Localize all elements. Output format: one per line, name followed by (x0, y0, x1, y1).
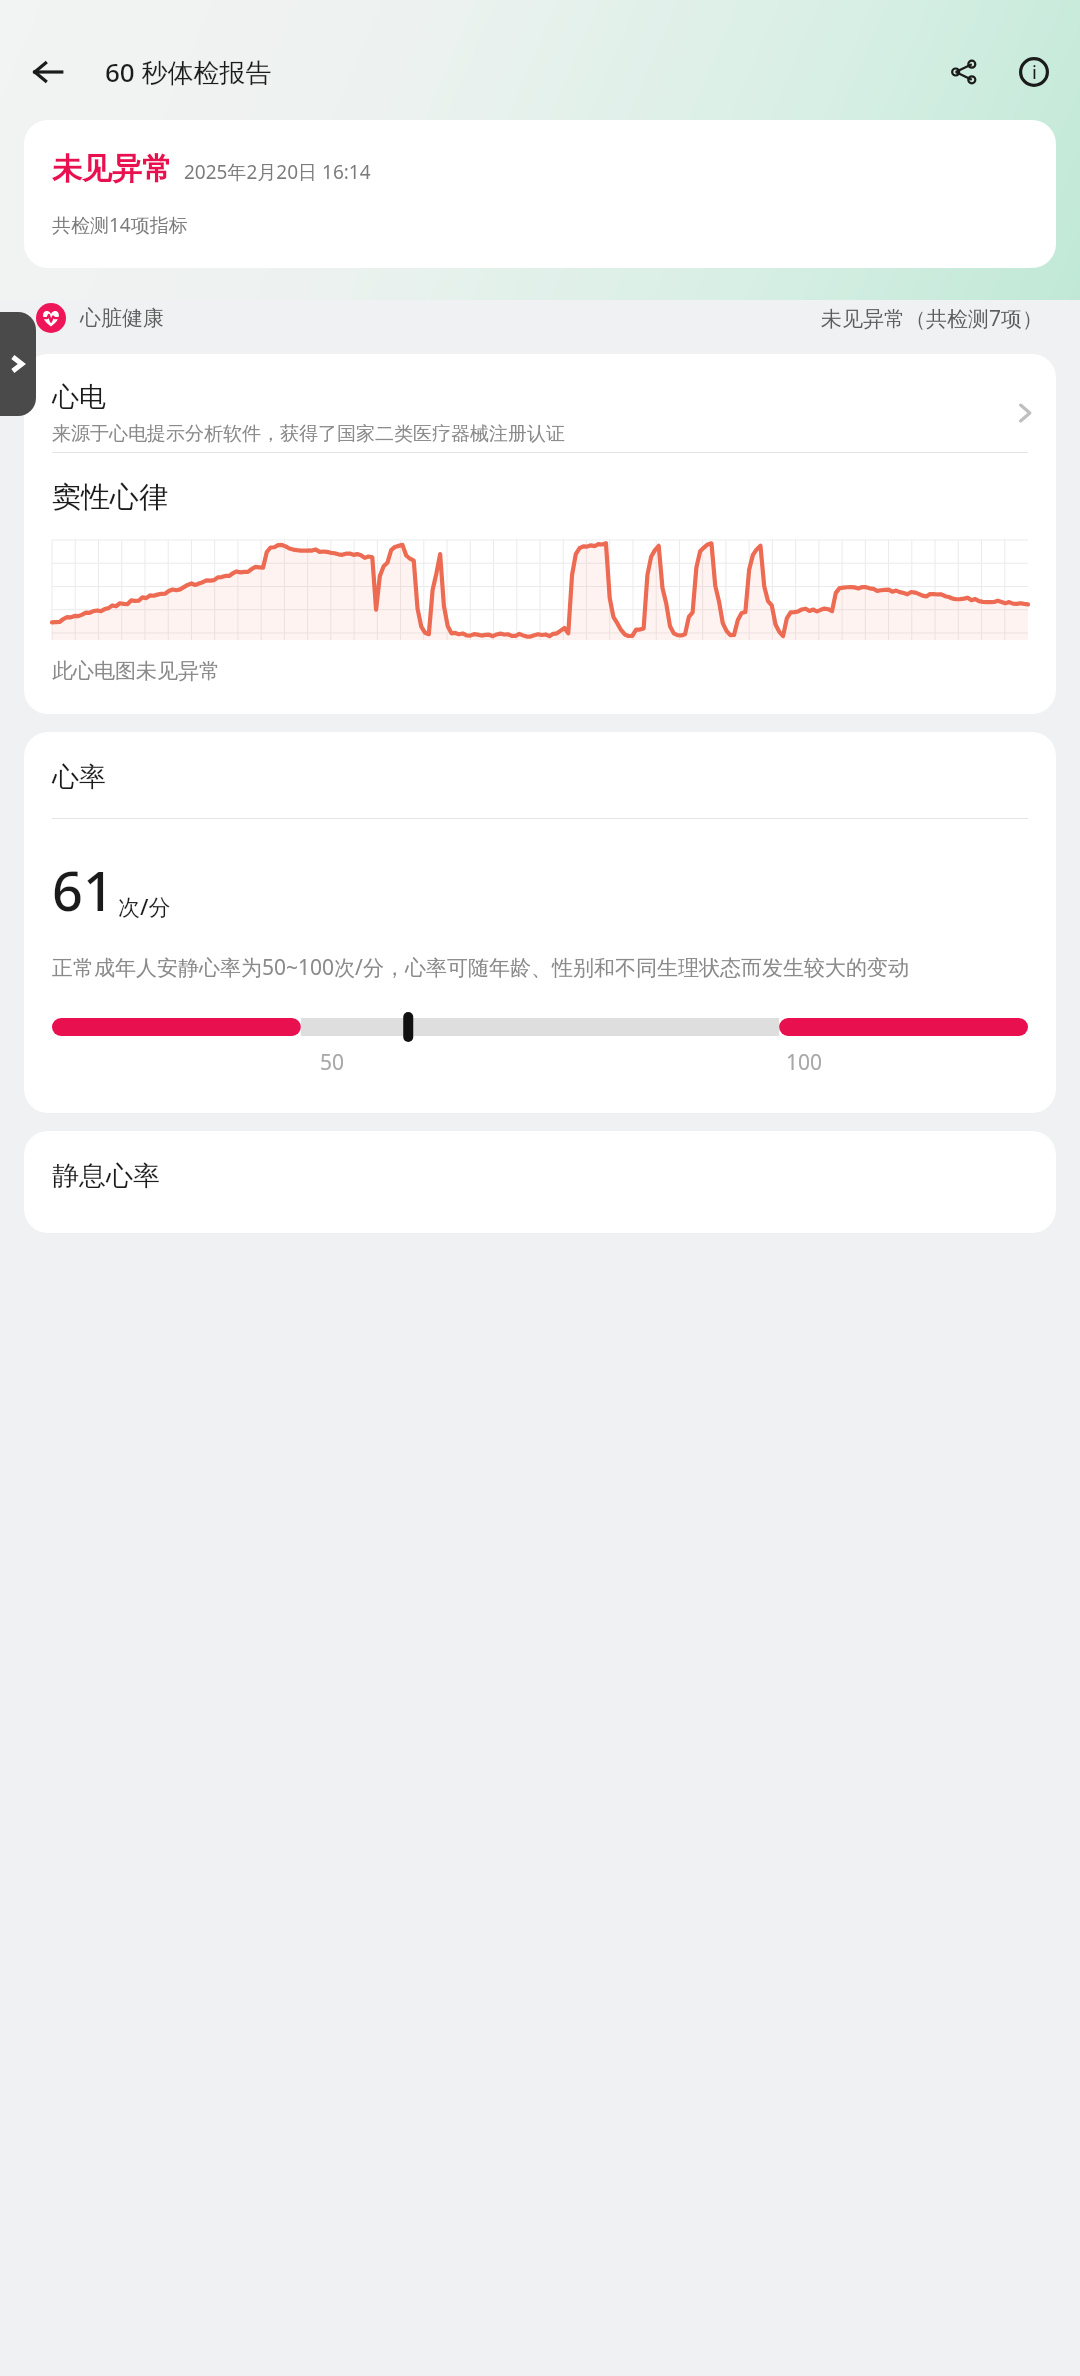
staticText: 未见异常（共检测7项） (821, 304, 1044, 333)
staticText: 100 (786, 1048, 823, 1077)
button[interactable]: Share (936, 44, 992, 100)
staticText: 60 秒体检报告 (105, 54, 272, 90)
button[interactable]: 静息心率 (24, 1131, 1056, 1233)
staticText: 次/分 (118, 891, 171, 921)
staticText: 心率 (52, 760, 106, 794)
button[interactable]: 心脏健康 (36, 292, 1044, 344)
staticText: i (1032, 60, 1037, 85)
button[interactable]: Open drawer (0, 312, 36, 416)
staticText: 2025年2月20日 16:14 (184, 159, 371, 185)
staticText: 心脏健康 (80, 305, 164, 331)
staticText: 来源于心电提示分析软件，获得了国家二类医疗器械注册认证 (52, 422, 565, 446)
button[interactable]: Back (20, 44, 76, 100)
staticText: 50 (320, 1048, 345, 1077)
staticText: 共检测14项指标 (52, 212, 188, 238)
button[interactable]: Info (1006, 44, 1062, 100)
button[interactable]: 心电 (24, 354, 1056, 714)
staticText: 心电 (52, 380, 106, 414)
staticText: 窦性心律 (52, 479, 168, 516)
button[interactable]: 心率 (24, 732, 1056, 1113)
staticText: 正常成年人安静心率为50~100次/分，心率可随年龄、性别和不同生理状态而发生较… (52, 953, 909, 982)
staticText: 未见异常 (52, 150, 172, 188)
button[interactable]: 未见异常 (24, 120, 1056, 268)
staticText: 静息心率 (52, 1159, 160, 1193)
staticText: 61 (52, 853, 114, 927)
staticText: 此心电图未见异常 (52, 658, 220, 684)
